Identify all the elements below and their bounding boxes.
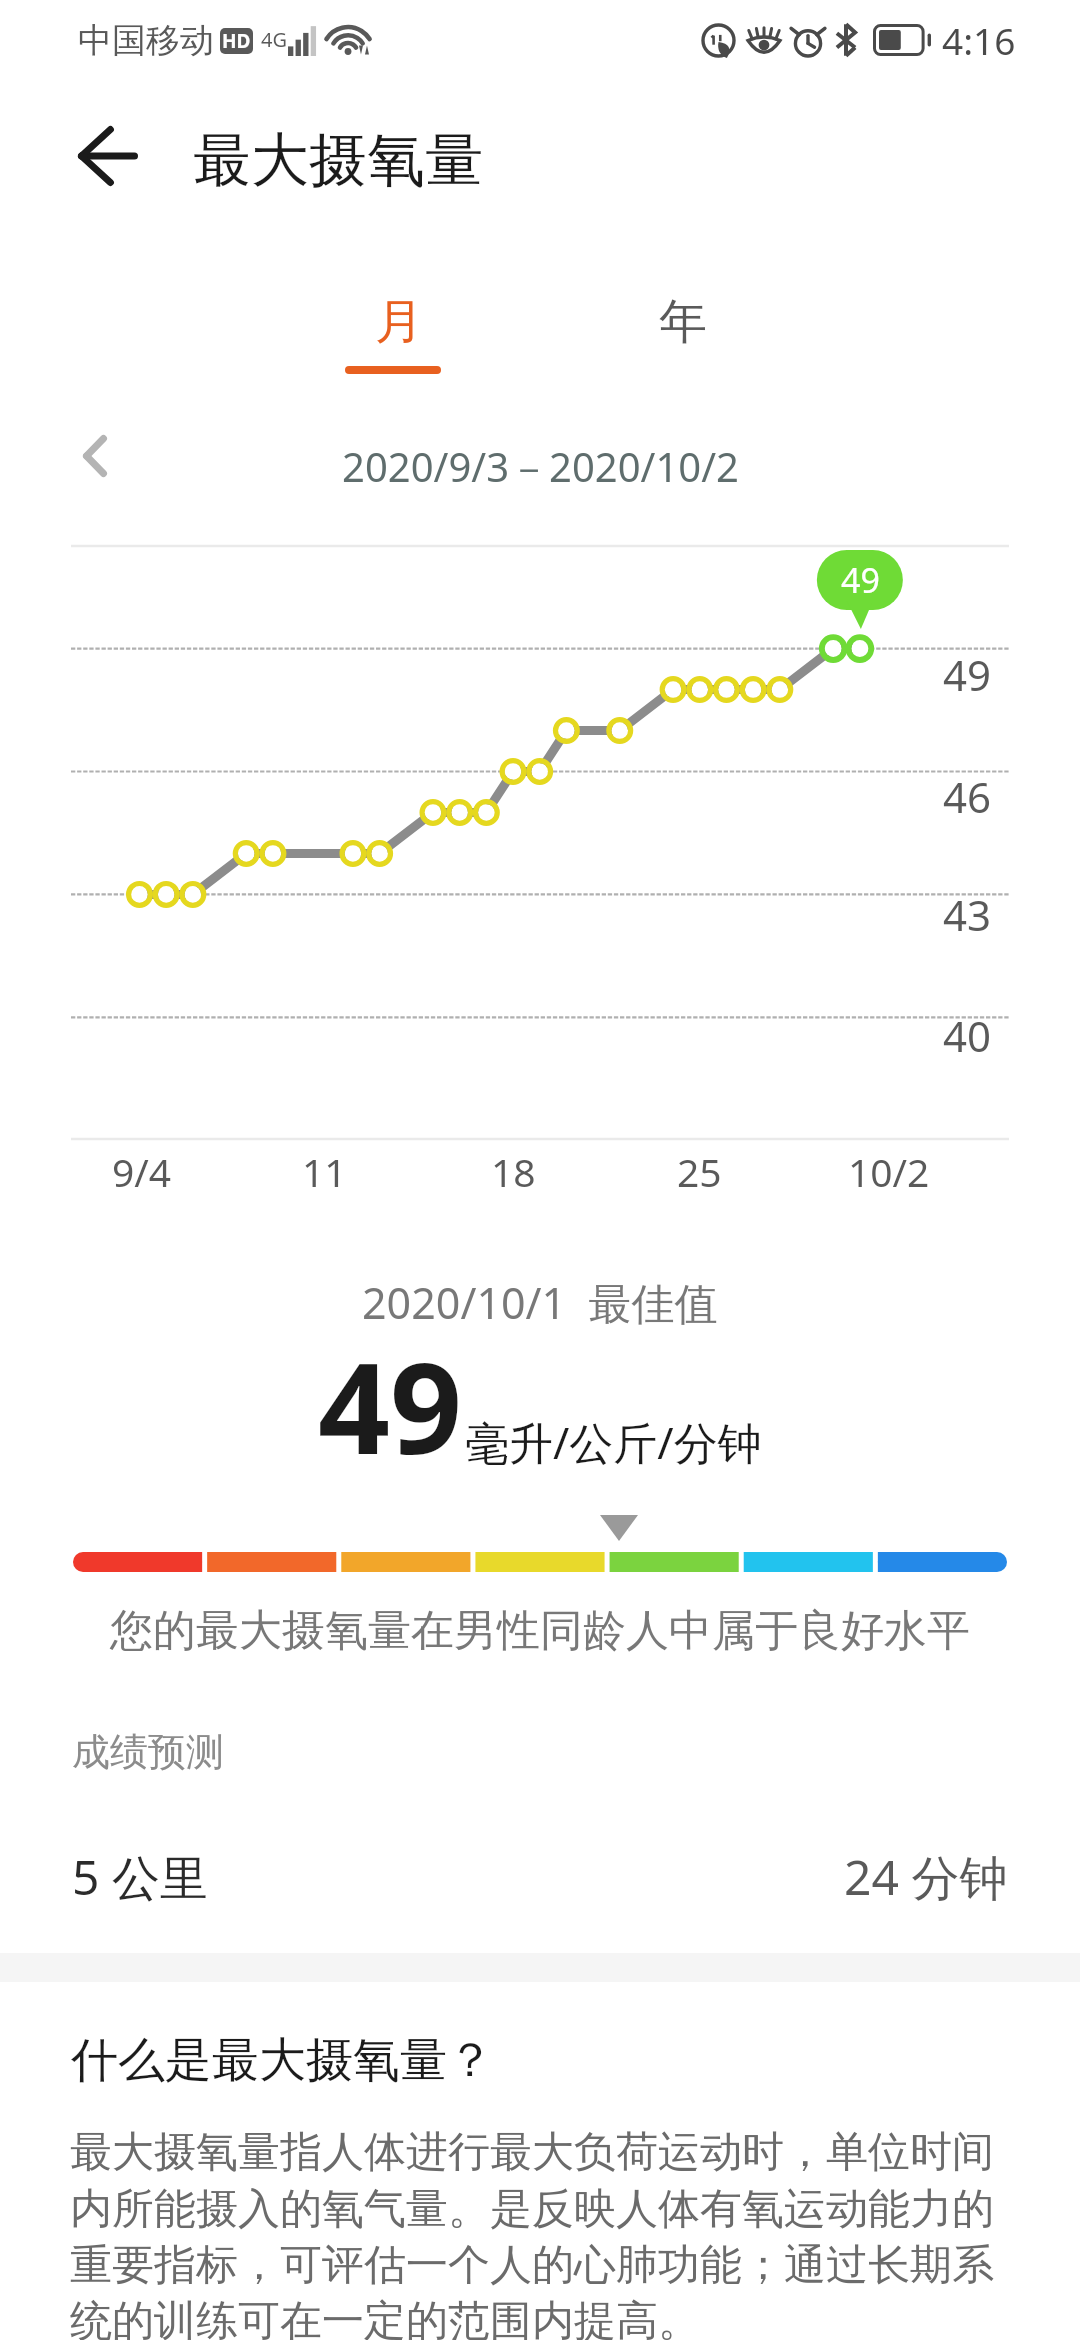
staticText: 最大摄氧量 <box>193 124 483 197</box>
staticText: 2020/10/1 最佳值 <box>362 1273 718 1332</box>
staticText: HD <box>222 28 251 54</box>
staticText: 40 <box>943 1007 992 1064</box>
staticText: 25 <box>677 1145 722 1198</box>
staticText: 18 <box>491 1145 536 1198</box>
staticText: 4:16 <box>942 15 1016 65</box>
staticText: 43 <box>943 886 992 943</box>
button[interactable]: Back <box>38 106 178 206</box>
staticText: 毫升/公斤/分钟 <box>465 1412 762 1472</box>
staticText: 2020/9/3－2020/10/2 <box>342 439 739 494</box>
staticText: 5 公里 <box>72 1844 208 1910</box>
staticText: 46 <box>943 768 992 825</box>
staticText: 49 <box>318 1319 463 1459</box>
button[interactable]: 年 <box>577 278 789 366</box>
button[interactable]: Previous period <box>50 410 140 502</box>
staticText: 年 <box>659 292 707 352</box>
button[interactable]: 月 <box>293 278 505 408</box>
staticText: 您的最大摄氧量在男性同龄人中属于良好水平 <box>110 1604 970 1658</box>
staticText: 月 <box>375 292 423 352</box>
staticText: 成绩预测 <box>72 1728 224 1776</box>
button[interactable]: 5 公里 <box>0 1832 1080 1922</box>
staticText: 9/4 <box>112 1145 172 1198</box>
staticText: 中国移动 <box>78 19 214 62</box>
staticText: 10/2 <box>848 1145 930 1198</box>
staticText: 49 <box>841 557 880 603</box>
staticText: 4G <box>261 26 287 53</box>
staticText: 什么是最大摄氧量？ <box>71 2031 494 2090</box>
staticText: 24 分钟 <box>844 1844 1008 1910</box>
staticText: 11 <box>302 1145 347 1198</box>
staticText: 49 <box>943 646 992 703</box>
staticText: 最大摄氧量指人体进行最大负荷运动时，单位时间内所能摄入的氧气量。是反映人体有氧运… <box>70 2126 1020 2340</box>
